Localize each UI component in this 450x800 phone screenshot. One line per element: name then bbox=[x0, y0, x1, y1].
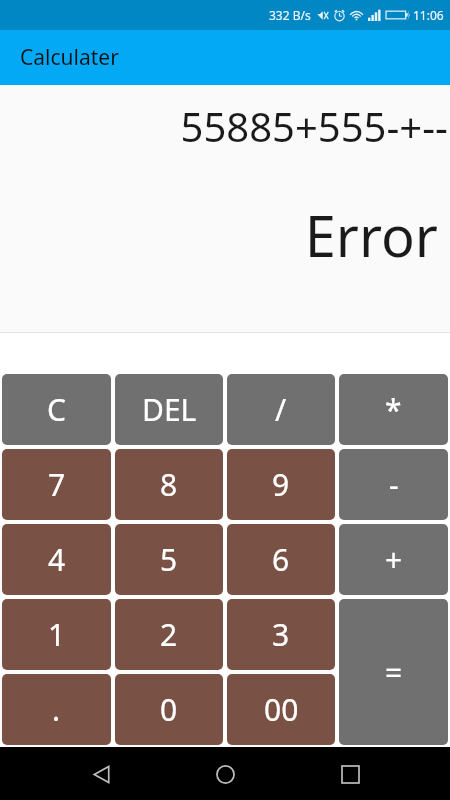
button[interactable]: DEL bbox=[115, 374, 223, 445]
button[interactable]: 8 bbox=[115, 449, 223, 520]
button[interactable]: Recent apps bbox=[326, 750, 374, 798]
staticText: 11:06 bbox=[413, 7, 444, 23]
staticText: C bbox=[47, 389, 66, 430]
staticText: DEL bbox=[142, 389, 197, 430]
button[interactable]: 9 bbox=[227, 449, 335, 520]
staticText: = bbox=[385, 652, 403, 693]
staticText: 3 bbox=[272, 614, 290, 655]
staticText: * bbox=[385, 389, 402, 430]
button[interactable]: - bbox=[339, 449, 448, 520]
button[interactable]: 1 bbox=[2, 599, 111, 670]
button[interactable]: 0 bbox=[115, 674, 223, 745]
button[interactable]: 5 bbox=[115, 524, 223, 595]
staticText: 8 bbox=[160, 464, 178, 505]
staticText: Calculater bbox=[20, 43, 119, 72]
button[interactable]: = bbox=[339, 599, 448, 745]
button[interactable]: 7 bbox=[2, 449, 111, 520]
staticText: 5 bbox=[160, 539, 178, 580]
button[interactable]: Back bbox=[77, 750, 125, 798]
button[interactable]: Home bbox=[201, 750, 249, 798]
staticText: 1 bbox=[48, 614, 66, 655]
staticText: 0 bbox=[160, 689, 178, 730]
staticText: 00 bbox=[264, 689, 299, 730]
button[interactable]: . bbox=[2, 674, 111, 745]
button[interactable]: + bbox=[339, 524, 448, 595]
button[interactable]: * bbox=[339, 374, 448, 445]
button[interactable]: C bbox=[2, 374, 111, 445]
staticText: 332 B/s bbox=[269, 7, 311, 23]
button[interactable]: 2 bbox=[115, 599, 223, 670]
staticText: + bbox=[385, 539, 403, 580]
button[interactable]: 4 bbox=[2, 524, 111, 595]
staticText: . bbox=[52, 689, 61, 730]
staticText: 6 bbox=[272, 539, 290, 580]
button[interactable]: 3 bbox=[227, 599, 335, 670]
staticText: 55885+555-+-- bbox=[0, 99, 448, 153]
button[interactable]: 00 bbox=[227, 674, 335, 745]
button[interactable]: 6 bbox=[227, 524, 335, 595]
button[interactable]: / bbox=[227, 374, 335, 445]
staticText: 4 bbox=[48, 539, 66, 580]
staticText: - bbox=[389, 464, 399, 505]
staticText: 2 bbox=[160, 614, 178, 655]
staticText: / bbox=[275, 389, 287, 430]
staticText: Error bbox=[0, 197, 438, 273]
staticText: 9 bbox=[272, 464, 290, 505]
staticText: 7 bbox=[48, 464, 66, 505]
